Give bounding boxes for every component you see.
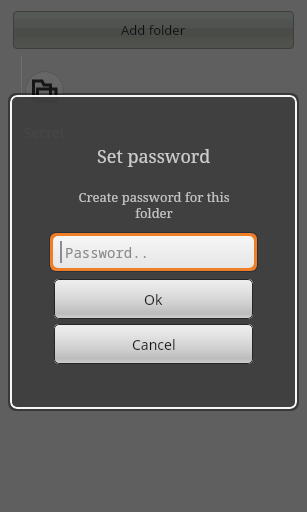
button[interactable]: Cancel xyxy=(54,324,253,364)
staticText: Password.. xyxy=(65,243,149,262)
staticText: Add folder xyxy=(121,21,186,39)
button[interactable]: Open folder Secret xyxy=(13,71,75,142)
staticText: Ok xyxy=(144,290,163,309)
button[interactable]: Ok xyxy=(54,279,253,319)
other: Open folder Secret xyxy=(25,71,64,110)
staticText: Cancel xyxy=(132,335,176,354)
button[interactable]: Add folder xyxy=(13,11,294,49)
staticText: Create password for this folder xyxy=(68,188,240,221)
button[interactable]: Password.. xyxy=(53,236,254,268)
staticText: Set password xyxy=(97,144,211,169)
